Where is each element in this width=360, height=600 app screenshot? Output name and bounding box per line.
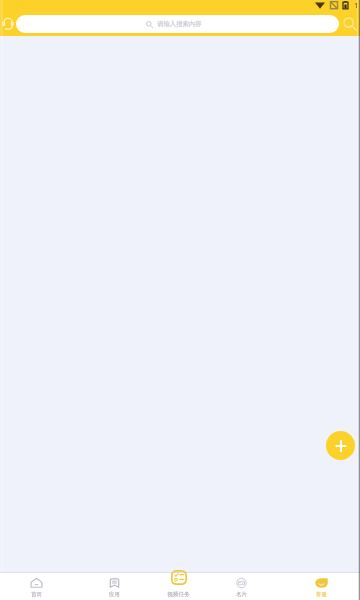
button[interactable]: 视频任务 [152, 569, 204, 600]
button[interactable]: Add [326, 431, 355, 460]
button[interactable]: 名片 [219, 572, 263, 600]
staticText: 视频任务 [167, 591, 190, 598]
button[interactable]: Search [341, 15, 359, 33]
button[interactable]: 客服 [299, 572, 343, 600]
button[interactable]: 请输入搜索内容 [16, 15, 339, 33]
staticText: 客服 [316, 591, 327, 598]
staticText: 首页 [31, 591, 42, 598]
staticText: 请输入搜索内容 [157, 20, 202, 28]
staticText: 1 [354, 0, 359, 10]
button[interactable]: 应用 [92, 572, 136, 600]
staticText: 应用 [109, 591, 120, 598]
staticText: 名片 [236, 591, 247, 598]
button[interactable]: 首页 [14, 572, 58, 600]
button[interactable]: Customer service [0, 14, 16, 33]
